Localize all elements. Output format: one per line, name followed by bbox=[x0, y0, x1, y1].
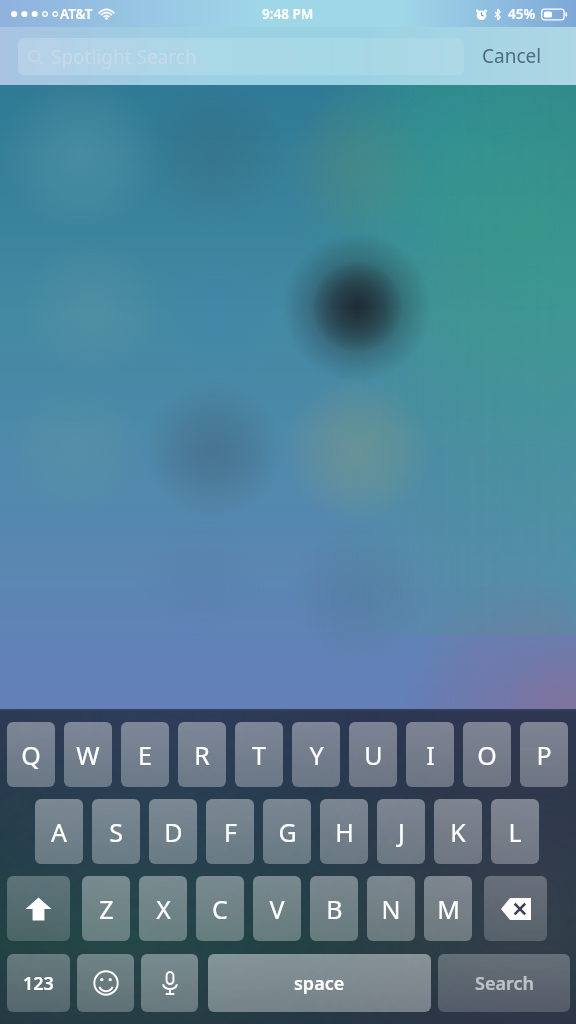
staticText: P bbox=[536, 738, 552, 772]
button[interactable]: L bbox=[491, 799, 539, 864]
button[interactable]: J bbox=[377, 799, 425, 864]
staticText: O bbox=[477, 738, 497, 772]
staticText: 9:48 PM bbox=[262, 5, 314, 23]
button[interactable]: Y bbox=[292, 722, 340, 787]
button[interactable]: M bbox=[424, 876, 472, 941]
staticText: T bbox=[252, 738, 266, 772]
button[interactable]: Q bbox=[7, 722, 55, 787]
staticText: L bbox=[508, 815, 522, 849]
staticText: I bbox=[426, 738, 435, 772]
staticText: U bbox=[364, 738, 383, 772]
button[interactable]: H bbox=[320, 799, 368, 864]
button[interactable]: I bbox=[406, 722, 454, 787]
staticText: A bbox=[51, 815, 67, 849]
button[interactable]: Dictate bbox=[141, 954, 198, 1012]
button[interactable]: Delete bbox=[484, 876, 547, 941]
staticText: X bbox=[156, 892, 171, 926]
button[interactable]: V bbox=[253, 876, 301, 941]
staticText: Search bbox=[475, 971, 534, 996]
button[interactable]: W bbox=[64, 722, 112, 787]
staticText: J bbox=[398, 815, 405, 849]
staticText: F bbox=[224, 815, 237, 849]
button[interactable]: A bbox=[35, 799, 83, 864]
button[interactable]: Emoji bbox=[77, 954, 134, 1012]
staticText: G bbox=[278, 815, 297, 849]
staticText: V bbox=[269, 892, 285, 926]
staticText: 123 bbox=[23, 971, 54, 996]
staticText: M bbox=[437, 892, 460, 926]
staticText: K bbox=[450, 815, 466, 849]
staticText: 45% bbox=[508, 5, 536, 23]
staticText: W bbox=[76, 738, 100, 772]
staticText: E bbox=[138, 738, 152, 772]
button[interactable]: Spotlight Search bbox=[18, 38, 464, 75]
button[interactable]: G bbox=[263, 799, 311, 864]
button[interactable]: C bbox=[196, 876, 244, 941]
button[interactable]: N bbox=[367, 876, 415, 941]
button[interactable]: space bbox=[208, 954, 431, 1012]
staticText: space bbox=[294, 971, 345, 996]
button[interactable]: Z bbox=[82, 876, 130, 941]
button[interactable]: Shift bbox=[7, 876, 70, 941]
staticText: S bbox=[109, 815, 123, 849]
staticText: N bbox=[381, 892, 401, 926]
button[interactable]: F bbox=[206, 799, 254, 864]
button[interactable]: P bbox=[520, 722, 568, 787]
button[interactable]: Cancel bbox=[478, 37, 546, 75]
button[interactable]: Search bbox=[438, 954, 570, 1012]
button[interactable]: X bbox=[139, 876, 187, 941]
staticText: Cancel bbox=[482, 43, 542, 69]
staticText: R bbox=[194, 738, 210, 772]
button[interactable]: U bbox=[349, 722, 397, 787]
button[interactable]: 123 bbox=[7, 954, 70, 1012]
staticText: AT&T bbox=[60, 5, 93, 23]
staticText: Q bbox=[21, 738, 41, 772]
button[interactable]: E bbox=[121, 722, 169, 787]
button[interactable]: S bbox=[92, 799, 140, 864]
staticText: D bbox=[164, 815, 183, 849]
button[interactable]: R bbox=[178, 722, 226, 787]
staticText: Z bbox=[99, 892, 114, 926]
button[interactable]: D bbox=[149, 799, 197, 864]
button[interactable]: K bbox=[434, 799, 482, 864]
button[interactable]: B bbox=[310, 876, 358, 941]
staticText: H bbox=[335, 815, 354, 849]
staticText: Y bbox=[309, 738, 324, 772]
button[interactable]: O bbox=[463, 722, 511, 787]
staticText: C bbox=[212, 892, 228, 926]
button[interactable]: T bbox=[235, 722, 283, 787]
staticText: B bbox=[326, 892, 343, 926]
staticText: Spotlight Search bbox=[51, 44, 197, 70]
